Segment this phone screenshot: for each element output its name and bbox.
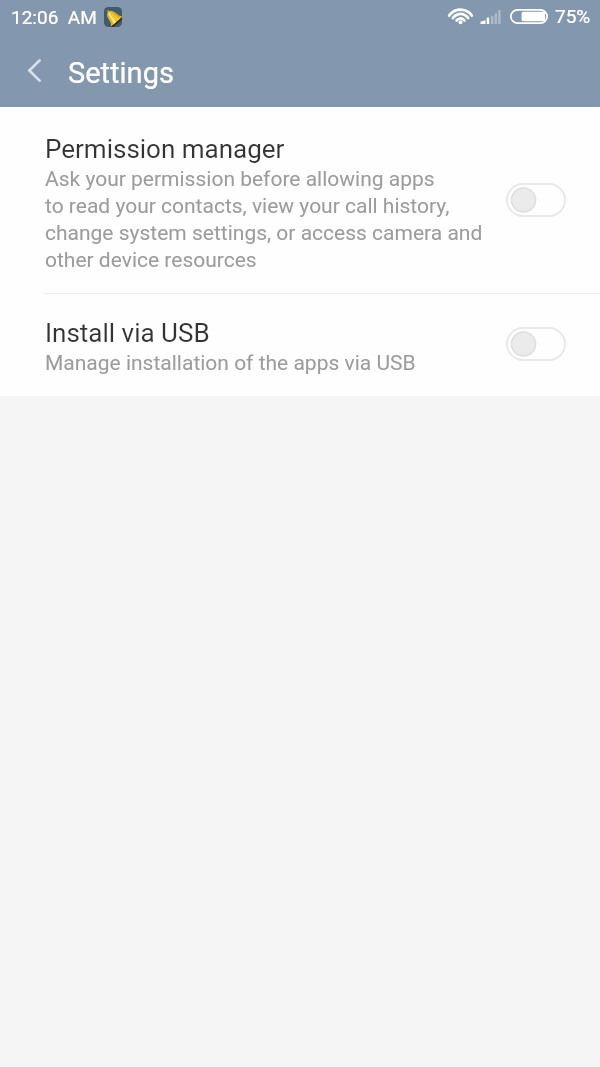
other: Signal strength xyxy=(480,10,501,24)
button[interactable]: Toggle Permission manager xyxy=(506,183,566,217)
other: Wi-Fi xyxy=(449,8,472,24)
button[interactable]: Toggle Install via USB xyxy=(506,327,566,361)
staticText: Settings xyxy=(68,56,174,90)
button[interactable]: Back xyxy=(6,35,62,106)
button[interactable]: Install via USB xyxy=(0,294,600,396)
staticText: Install via USB xyxy=(45,318,210,348)
staticText: Manage installation of the apps via USB xyxy=(45,351,416,376)
staticText: 75% xyxy=(555,5,591,27)
button[interactable]: Permission manager xyxy=(0,107,600,293)
staticText: Permission manager xyxy=(45,134,285,164)
other: Notification xyxy=(104,7,122,27)
staticText: Ask your permission before allowing apps… xyxy=(45,167,483,272)
staticText: 12:06 AM xyxy=(11,6,97,28)
other: Battery 75 percent xyxy=(510,9,548,24)
